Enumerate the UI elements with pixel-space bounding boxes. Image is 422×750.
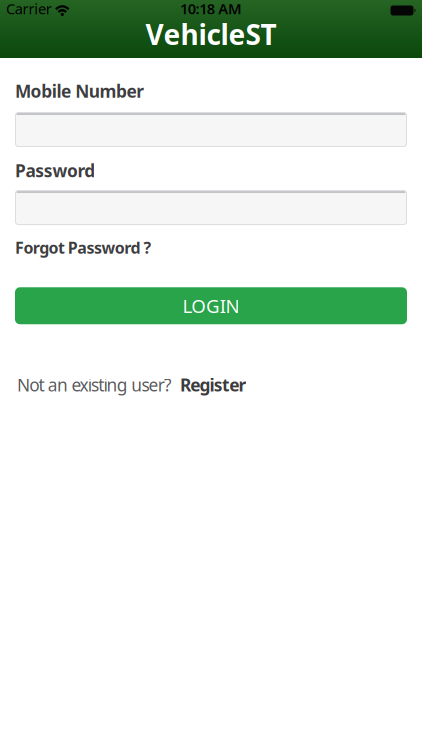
staticText: LOGIN xyxy=(183,293,239,318)
staticText: 10:18 AM xyxy=(180,0,242,18)
button[interactable]: Register xyxy=(180,373,246,396)
staticText: Forgot Password ? xyxy=(15,237,151,258)
staticText: Mobile Number xyxy=(15,79,144,102)
staticText: VehicleST xyxy=(145,15,276,53)
button[interactable] xyxy=(15,190,407,225)
staticText: Not an existing user? xyxy=(17,373,172,396)
staticText: Password xyxy=(15,159,95,182)
button[interactable]: Forgot Password ? xyxy=(15,237,151,258)
staticText: Register xyxy=(180,373,246,396)
staticText: Carrier xyxy=(6,0,52,18)
button[interactable] xyxy=(15,112,407,147)
button[interactable]: LOGIN xyxy=(15,287,407,324)
